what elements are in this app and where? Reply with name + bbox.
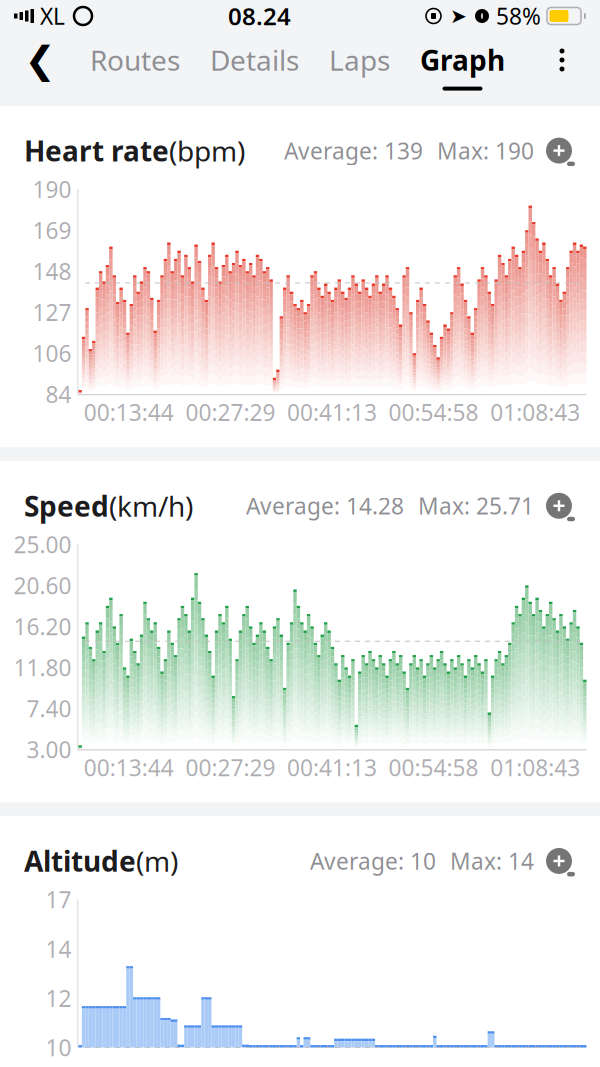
staticText: XL: [40, 1, 65, 31]
button[interactable]: Zoom in: [542, 845, 576, 877]
staticText: 25.00: [13, 529, 71, 559]
staticText: 00:54:58: [389, 752, 479, 782]
staticText: 16.20: [13, 611, 71, 641]
staticText: 00:27:29: [185, 752, 275, 782]
staticText: 7.40: [26, 693, 71, 723]
staticText: 84: [45, 379, 71, 409]
staticText: Max: 25.71: [418, 491, 534, 521]
staticText: Max: 190: [437, 135, 534, 166]
staticText: ➤: [450, 5, 467, 27]
staticText: 11.80: [13, 652, 71, 682]
staticText: 00:41:13: [287, 397, 377, 427]
staticText: Routes: [90, 41, 180, 79]
staticText: (km/h): [109, 487, 193, 524]
staticText: 148: [32, 256, 71, 286]
staticText: 127: [32, 297, 71, 327]
staticText: 169: [32, 215, 71, 245]
staticText: 17: [45, 884, 71, 915]
staticText: 00:13:44: [84, 397, 174, 427]
staticText: 14: [45, 934, 71, 964]
button[interactable]: Graph: [414, 32, 511, 88]
staticText: Graph: [420, 41, 505, 79]
staticText: 01:08:43: [490, 397, 580, 427]
button[interactable]: Laps: [323, 32, 396, 88]
staticText: 00:27:29: [185, 397, 275, 427]
staticText: 10: [45, 1032, 71, 1063]
staticText: 12: [45, 983, 71, 1013]
staticText: (m): [136, 842, 178, 880]
staticText: 00:13:44: [84, 752, 174, 782]
staticText: 106: [32, 338, 71, 368]
staticText: ❮: [24, 39, 55, 81]
staticText: Details: [210, 41, 299, 79]
staticText: Heart rate: [24, 132, 169, 169]
staticText: Average: 139: [284, 135, 423, 166]
button[interactable]: Routes: [84, 32, 186, 88]
button[interactable]: More options: [534, 32, 590, 88]
staticText: 01:08:43: [490, 752, 580, 782]
button[interactable]: Zoom in: [542, 490, 576, 522]
staticText: Laps: [329, 41, 390, 79]
staticText: Max: 14: [450, 846, 534, 876]
staticText: 3.00: [26, 734, 71, 764]
staticText: 190: [32, 174, 71, 204]
staticText: Average: 10: [310, 846, 436, 876]
button[interactable]: Details: [204, 32, 305, 88]
staticText: 08.24: [228, 0, 291, 32]
staticText: (bpm): [169, 132, 245, 169]
staticText: Speed: [24, 487, 109, 524]
staticText: 20.60: [13, 570, 71, 600]
button[interactable]: Zoom in: [542, 135, 576, 167]
staticText: 00:54:58: [389, 397, 479, 427]
staticText: 00:41:13: [287, 752, 377, 782]
button[interactable]: Back: [10, 32, 70, 88]
staticText: Altitude: [24, 842, 136, 880]
staticText: 58%: [496, 1, 541, 31]
staticText: Average: 14.28: [246, 491, 404, 521]
